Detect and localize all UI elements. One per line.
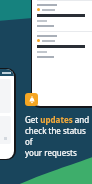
button[interactable]: Notifications [25,93,38,106]
button[interactable] [32,0,92,31]
button[interactable] [32,31,92,62]
staticText: Get updates and check the status of your… [25,114,92,158]
